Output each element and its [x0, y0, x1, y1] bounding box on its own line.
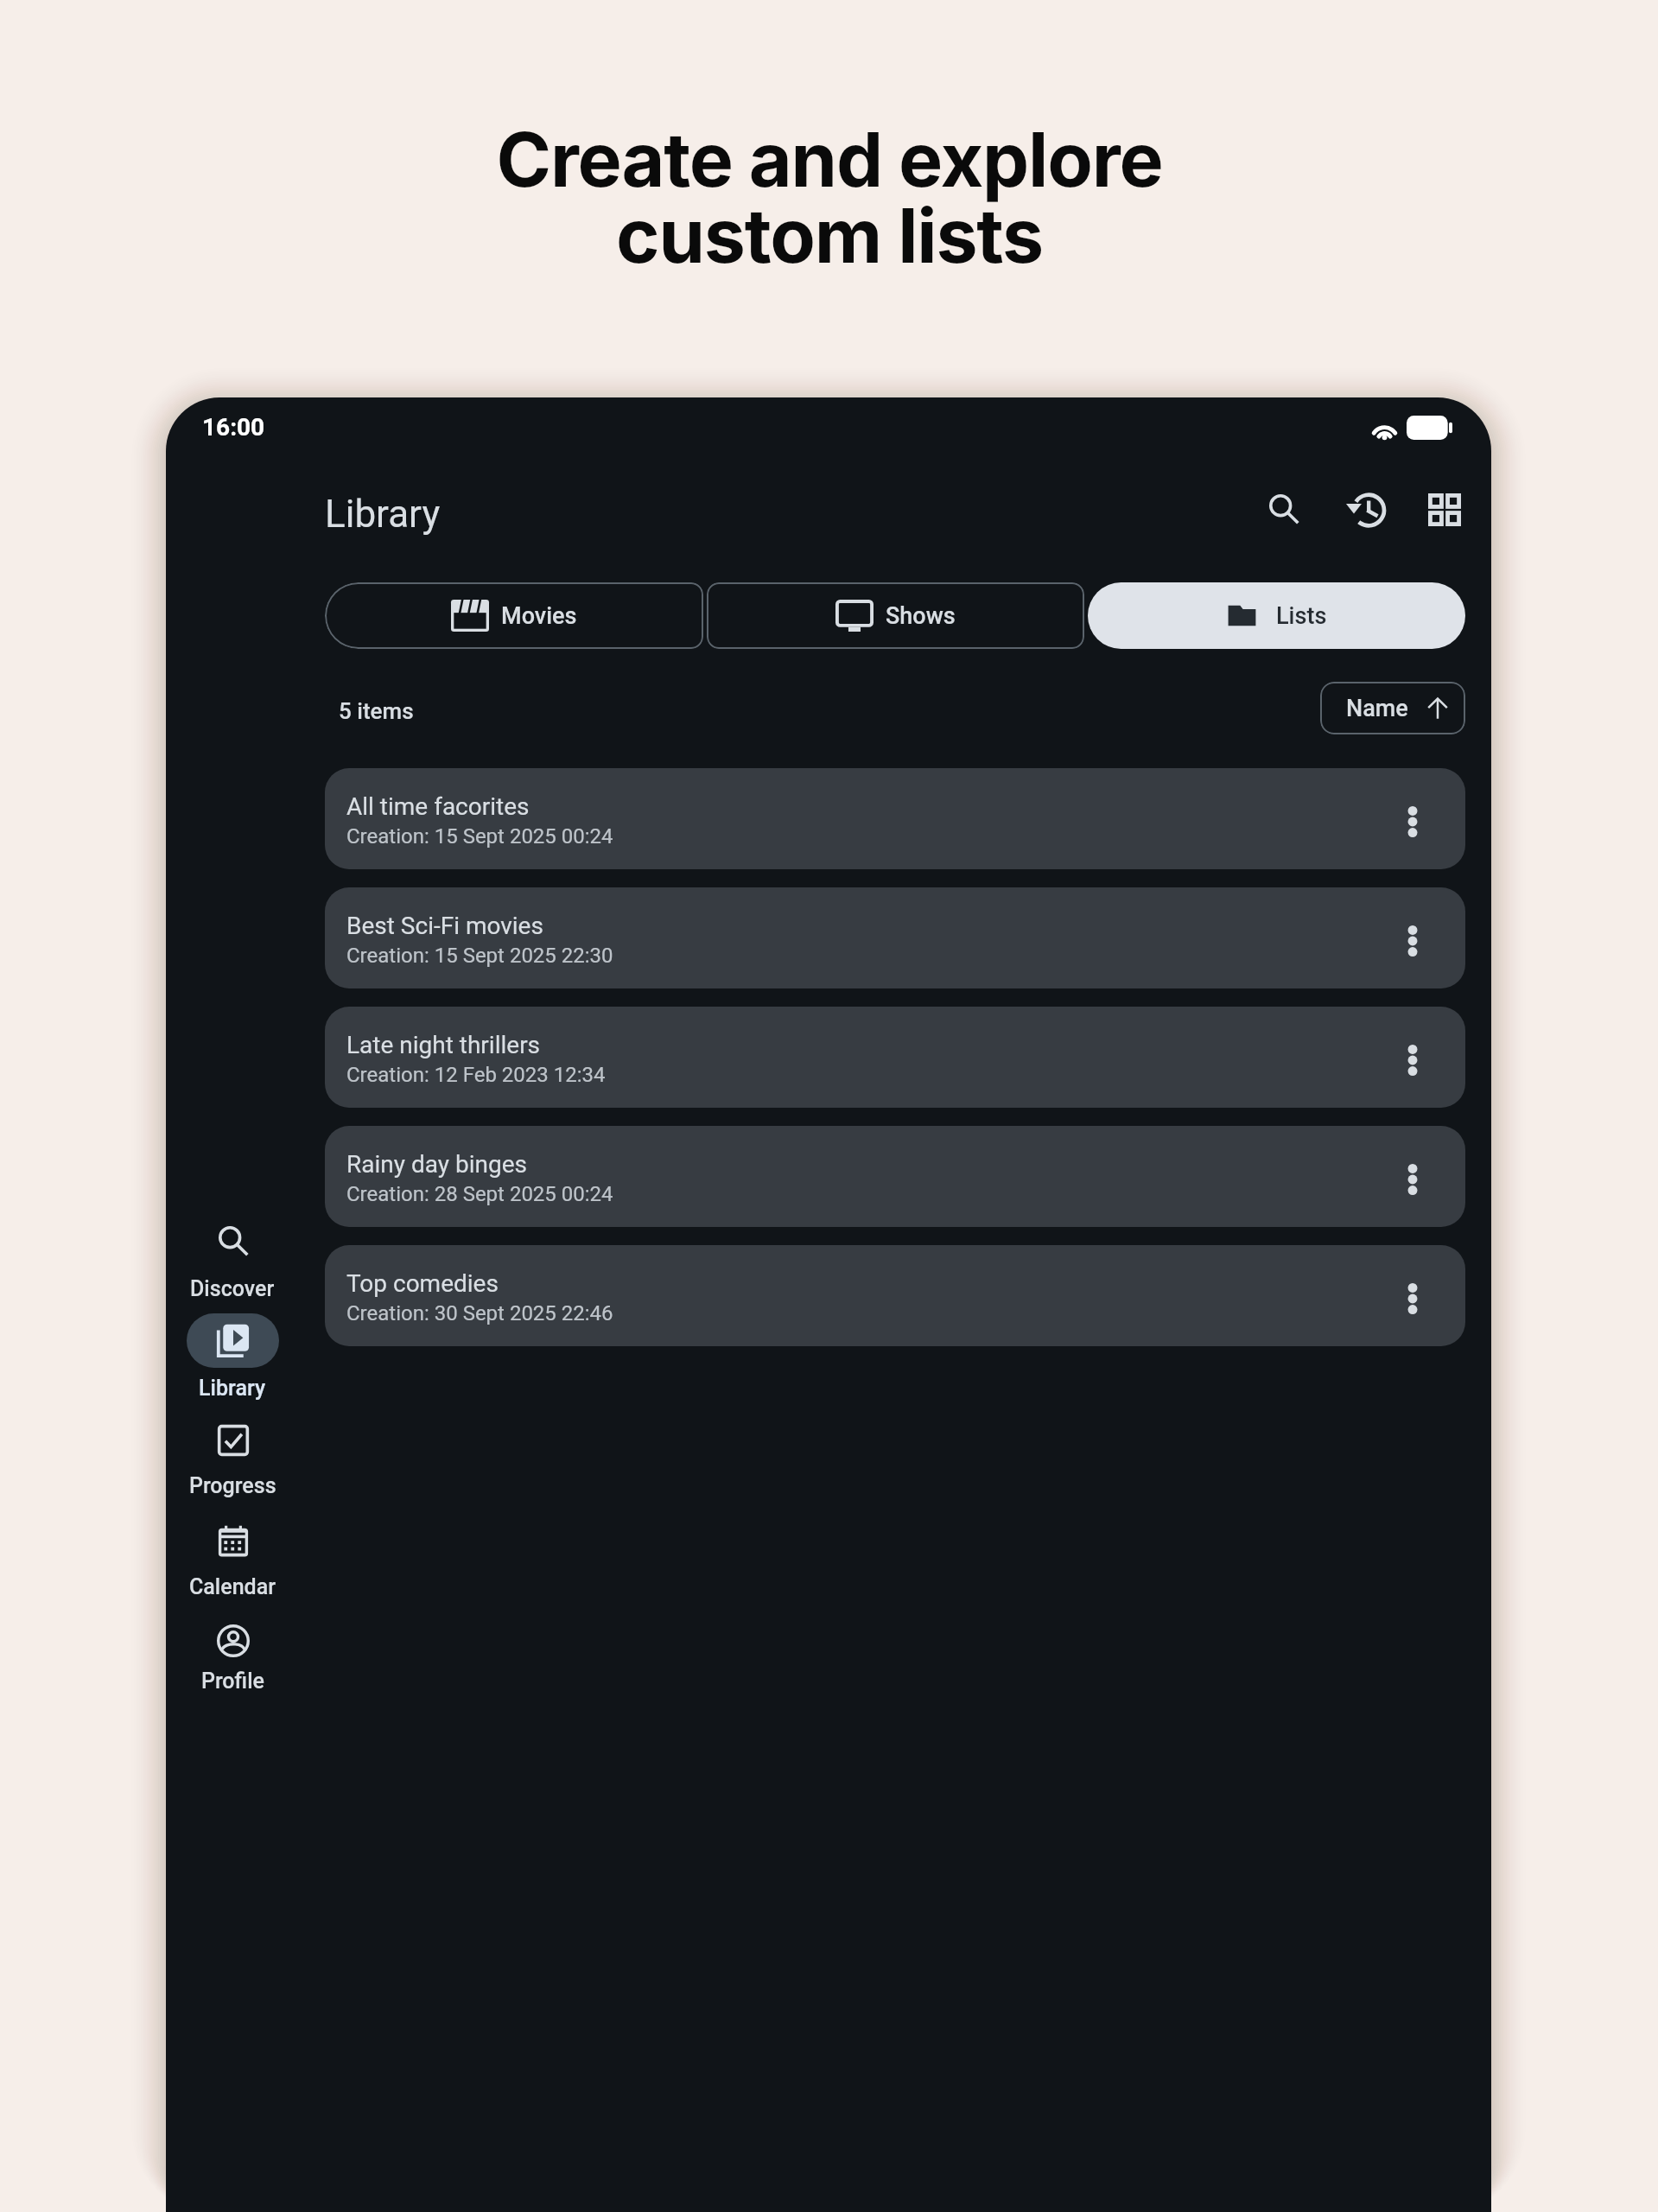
- button[interactable]: Top comedies: [325, 1245, 1465, 1346]
- staticText: Discover: [190, 1276, 275, 1301]
- staticText: Calendar: [189, 1574, 276, 1599]
- staticText: Top comedies: [346, 1269, 499, 1298]
- staticText: Progress: [189, 1473, 276, 1498]
- staticText: Creation: 15 Sept 2025 22:30: [346, 944, 613, 968]
- button[interactable]: Recent history: [1326, 470, 1406, 550]
- button[interactable]: Lists: [1088, 582, 1465, 649]
- staticText: 16:00: [202, 413, 265, 442]
- staticText: Library: [199, 1376, 266, 1401]
- staticText: Movies: [501, 602, 577, 630]
- button[interactable]: More options: [1373, 1020, 1452, 1100]
- staticText: Creation: 30 Sept 2025 22:46: [346, 1301, 613, 1325]
- button[interactable]: Best Sci-Fi movies: [325, 887, 1465, 988]
- button[interactable]: More options: [1373, 1140, 1452, 1219]
- button[interactable]: Grid view: [1405, 470, 1484, 550]
- button[interactable]: Movies: [325, 582, 703, 649]
- button[interactable]: Late night thrillers: [325, 1007, 1465, 1108]
- staticText: Name: [1346, 695, 1408, 722]
- staticText: Create and explore custom lists: [496, 115, 1163, 280]
- button[interactable]: Progress: [168, 1406, 297, 1499]
- staticText: Shows: [886, 602, 956, 630]
- staticText: Profile: [201, 1669, 264, 1694]
- button[interactable]: Search: [1244, 469, 1324, 549]
- staticText: Rainy day binges: [346, 1150, 527, 1179]
- staticText: Late night thrillers: [346, 1031, 541, 1059]
- button[interactable]: Name: [1320, 682, 1465, 734]
- button[interactable]: More options: [1373, 901, 1452, 981]
- button[interactable]: Library: [168, 1306, 297, 1402]
- button[interactable]: All time facorites: [325, 768, 1465, 869]
- button[interactable]: More options: [1373, 1259, 1452, 1338]
- staticText: Best Sci-Fi movies: [346, 912, 543, 940]
- staticText: Creation: 28 Sept 2025 00:24: [346, 1182, 613, 1206]
- button[interactable]: More options: [1373, 782, 1452, 861]
- staticText: 5 items: [339, 698, 414, 724]
- button[interactable]: Discover: [168, 1206, 297, 1302]
- button[interactable]: Profile: [168, 1606, 297, 1694]
- staticText: Creation: 15 Sept 2025 00:24: [346, 824, 613, 849]
- button[interactable]: Calendar: [168, 1507, 297, 1600]
- button[interactable]: Rainy day binges: [325, 1126, 1465, 1227]
- staticText: Lists: [1276, 602, 1327, 630]
- staticText: Creation: 12 Feb 2023 12:34: [346, 1063, 606, 1087]
- staticText: All time facorites: [346, 792, 530, 821]
- staticText: Library: [325, 492, 441, 537]
- button[interactable]: Shows: [707, 582, 1084, 649]
